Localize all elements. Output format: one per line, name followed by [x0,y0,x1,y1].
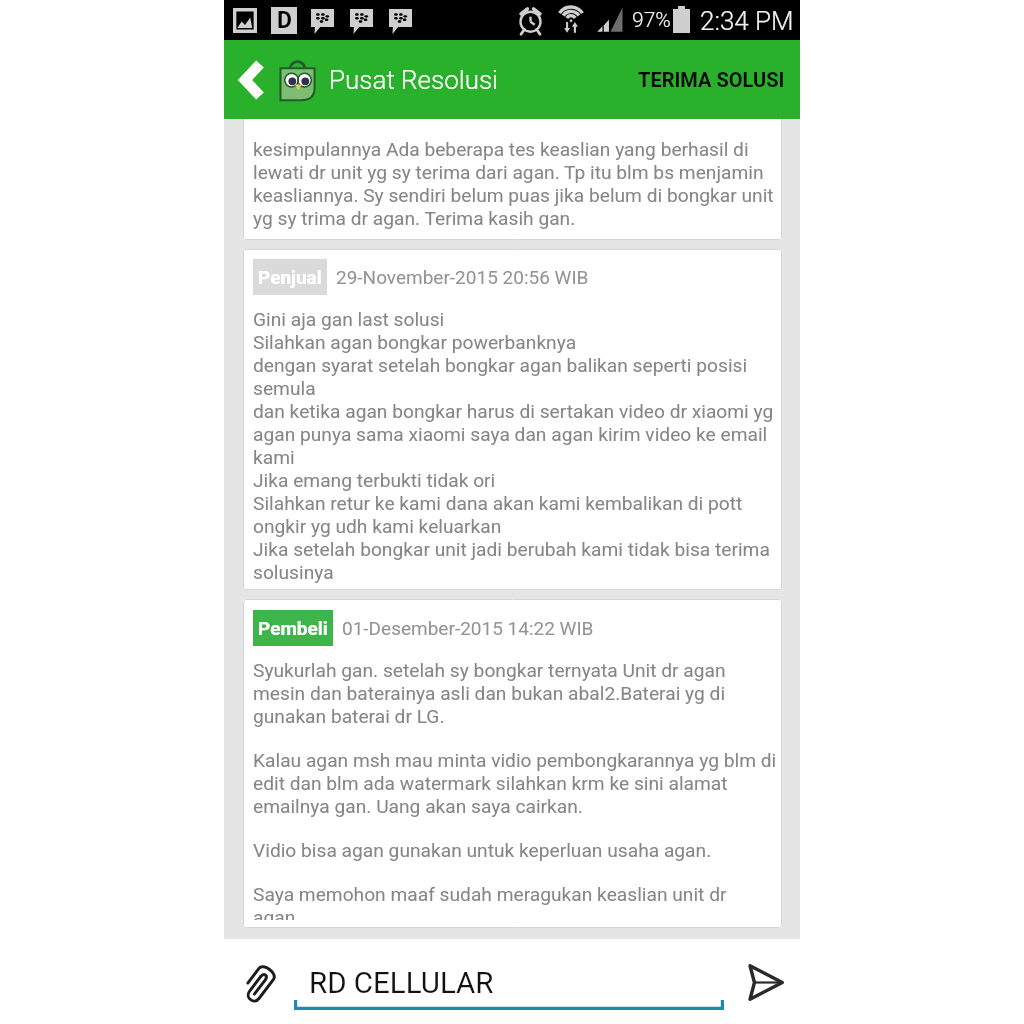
button[interactable]: Send [735,951,797,1013]
button[interactable]: Attach file [229,956,291,1018]
staticText: Gini aja gan last solusi Silahkan agan b… [253,308,774,584]
staticText: D [277,7,292,34]
button[interactable]: kesimpulannya Ada beberapa tes keaslian … [243,112,782,240]
button[interactable]: TERIMA SOLUSI [626,40,800,119]
button[interactable]: Pembeli [243,599,782,928]
staticText: Kalau agan msh mau minta vidio pembongka… [253,749,777,818]
staticText: Syukurlah gan. setelah sy bongkar ternya… [253,659,726,728]
staticText: Pusat Resolusi [329,65,498,95]
staticText: RD CELLULAR [309,966,494,1001]
staticText: Vidio bisa agan gunakan untuk keperluan … [253,839,712,862]
staticText: 97% [632,8,671,33]
staticText: 29-November-2015 20:56 WIB [336,266,589,288]
staticText: Saya memohon maaf sudah meragukan keasli… [253,883,727,920]
staticText: 01-Desember-2015 14:22 WIB [342,617,594,639]
staticText: Penjual [258,266,322,288]
button[interactable]: Back [226,40,278,119]
staticText: Pembeli [258,617,328,639]
button[interactable]: Penjual [243,249,782,590]
staticText: kesimpulannya Ada beberapa tes keaslian … [253,138,774,230]
staticText: 2:34 PM [700,6,794,36]
staticText: TERIMA SOLUSI [638,68,785,91]
